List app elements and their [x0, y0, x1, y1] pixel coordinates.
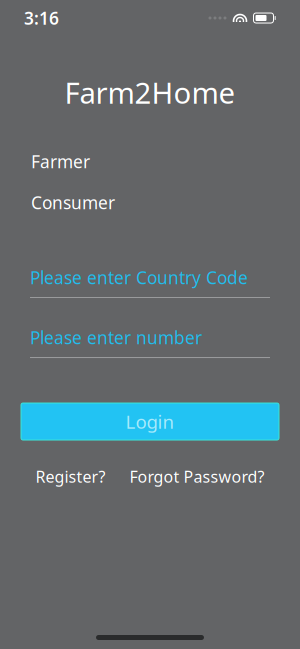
button[interactable]: Register?	[35, 466, 105, 487]
staticText: Please enter Country Code	[30, 266, 248, 289]
staticText: 3:16	[24, 6, 59, 29]
staticText: Login	[125, 409, 174, 434]
button[interactable]: Forgot Password?	[129, 466, 264, 487]
button[interactable]: Consumer	[31, 191, 269, 214]
button[interactable]: Farmer	[31, 150, 269, 173]
staticText: Forgot Password?	[129, 466, 264, 487]
staticText: Farm2Home	[64, 73, 235, 112]
staticText: Consumer	[31, 191, 115, 214]
staticText: Farmer	[31, 150, 90, 173]
staticText: Please enter number	[30, 326, 202, 349]
staticText: Register?	[35, 466, 105, 487]
button[interactable]: Login	[21, 403, 279, 440]
